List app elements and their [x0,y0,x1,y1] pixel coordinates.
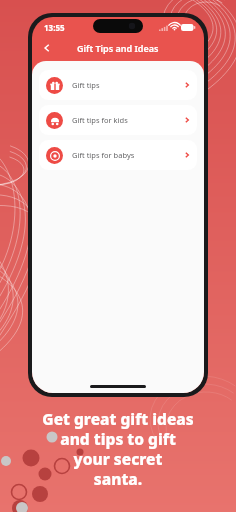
staticText: Gift tips [72,80,100,90]
button[interactable]: Gift tips for kids [39,105,197,135]
staticText: Gift tips for kids [72,115,128,125]
button[interactable]: Back [38,39,56,57]
staticText: 13:55 [44,22,65,33]
staticText: Gift tips for babys [72,150,135,160]
button[interactable]: Gift tips [39,70,197,100]
staticText: Gift Tips and Ideas [77,42,159,54]
staticText: Get great gift ideas and tips to gift yo… [42,408,194,489]
button[interactable]: Gift tips for babys [39,140,197,170]
